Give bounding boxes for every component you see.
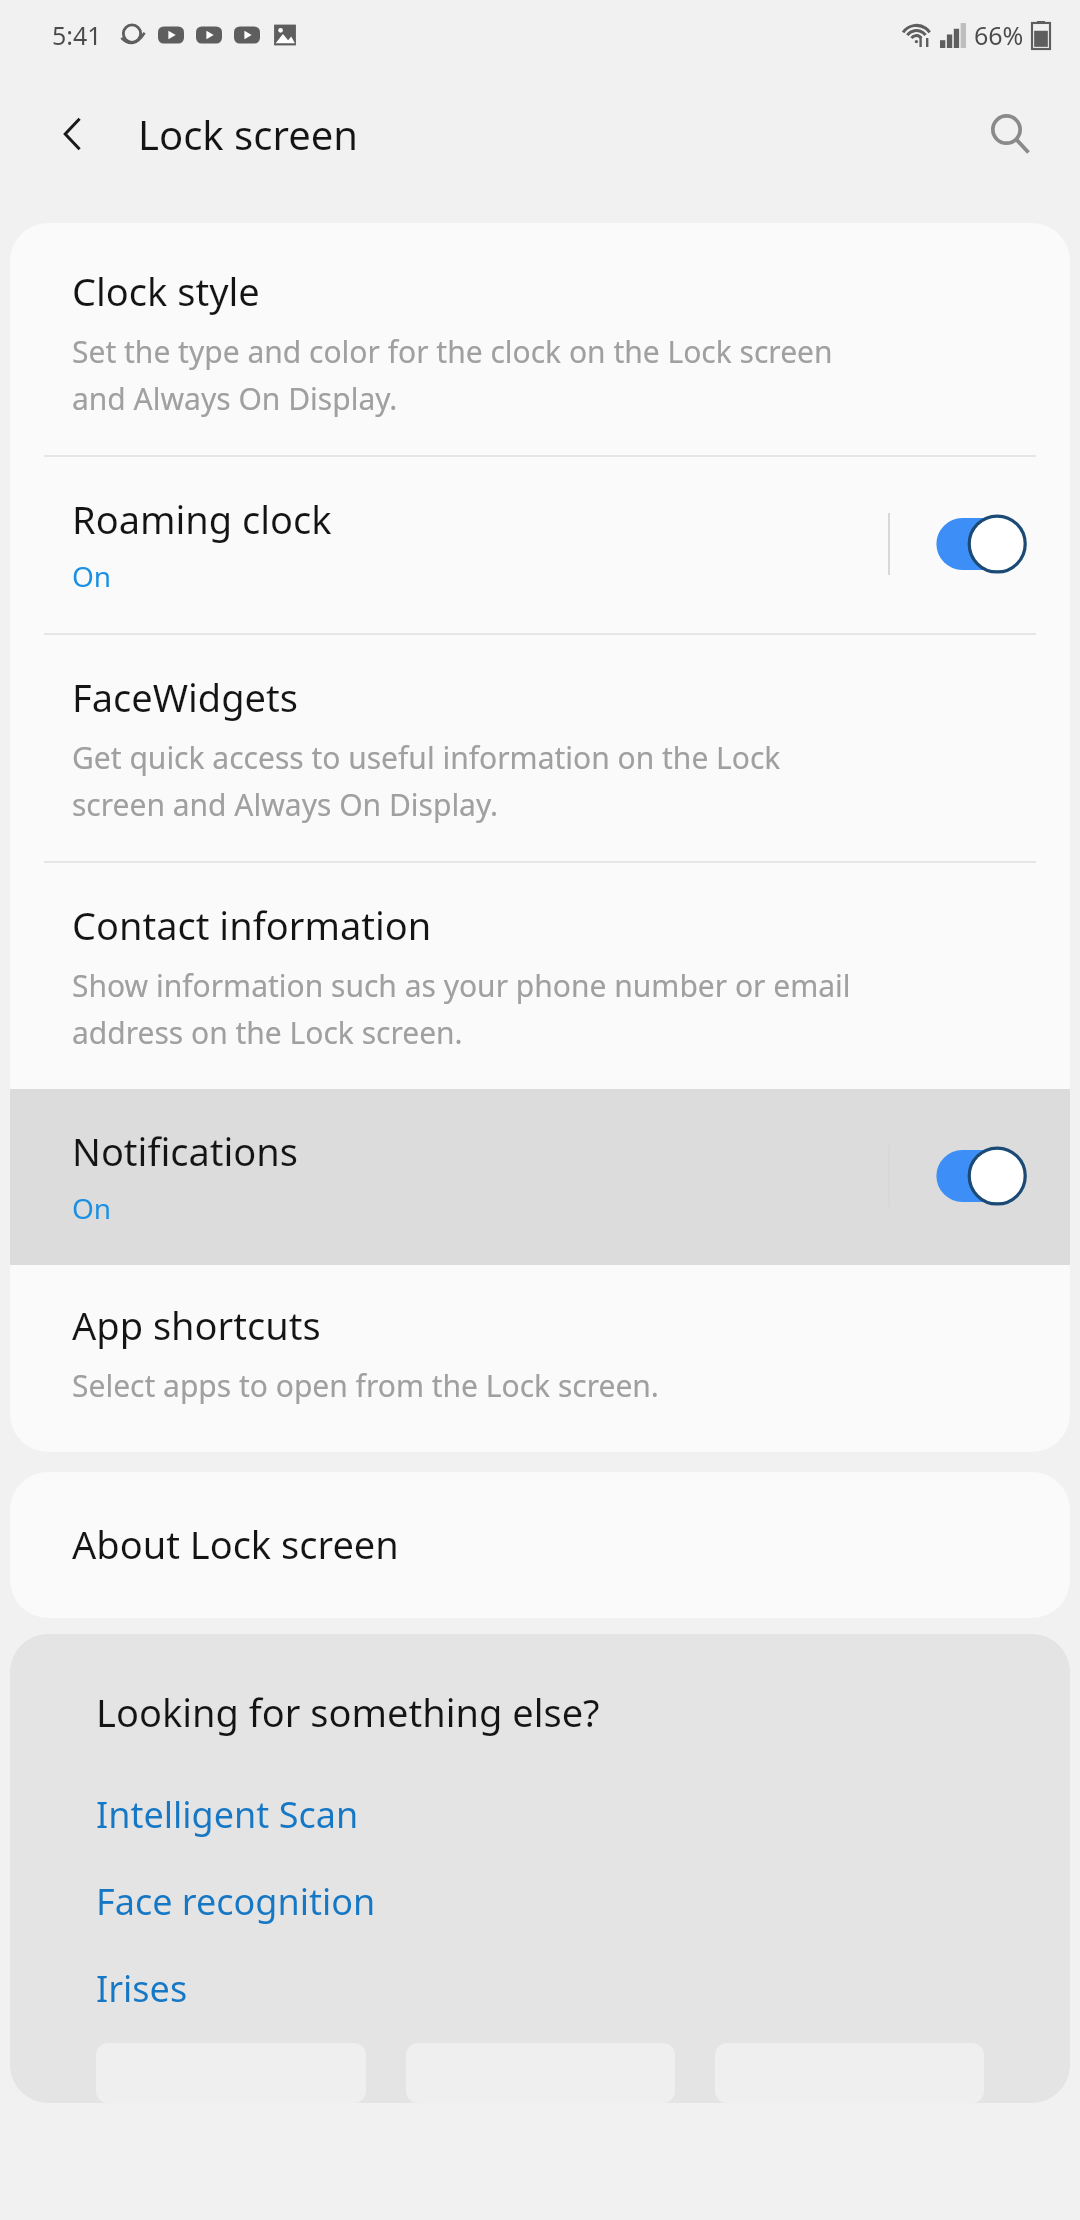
button[interactable]: Notifications toggle — [926, 1140, 1030, 1212]
button[interactable]: Clock style — [10, 223, 1070, 455]
button[interactable]: Search — [968, 92, 1052, 176]
staticText: Contact information — [72, 899, 432, 951]
staticText: Lock screen — [138, 107, 359, 161]
staticText: address on the Lock screen. — [72, 1012, 463, 1053]
staticText: Select apps to open from the Lock screen… — [72, 1365, 659, 1406]
staticText: Notifications — [72, 1125, 299, 1177]
staticText: Clock style — [72, 265, 260, 317]
button[interactable]: Irises — [96, 1964, 188, 2013]
staticText: 5:41 — [52, 18, 102, 52]
staticText: Looking for something else? — [96, 1686, 600, 1738]
button[interactable]: About Lock screen — [10, 1472, 1070, 1618]
staticText: Irises — [96, 1964, 188, 2013]
staticText: Roaming clock — [72, 493, 332, 545]
staticText: and Always On Display. — [72, 378, 398, 419]
staticText: Get quick access to useful information o… — [72, 737, 781, 778]
staticText: screen and Always On Display. — [72, 784, 499, 825]
button[interactable]: Notifications — [10, 1089, 1070, 1265]
staticText: Intelligent Scan — [96, 1790, 359, 1839]
staticText: Face recognition — [96, 1877, 376, 1926]
button[interactable]: FaceWidgets — [10, 635, 1070, 861]
button[interactable]: Back — [34, 94, 114, 174]
button[interactable]: Face recognition — [96, 1877, 376, 1926]
staticText: 66% — [974, 18, 1024, 52]
staticText: About Lock screen — [72, 1518, 399, 1570]
button[interactable]: Roaming clock — [10, 457, 1070, 633]
staticText: FaceWidgets — [72, 671, 298, 723]
button[interactable]: App shortcuts — [10, 1265, 1070, 1452]
staticText: On — [72, 557, 112, 595]
staticText: Set the type and color for the clock on … — [72, 331, 833, 372]
staticText: Show information such as your phone numb… — [72, 965, 851, 1006]
button[interactable]: Roaming clock toggle — [926, 508, 1030, 580]
staticText: App shortcuts — [72, 1299, 321, 1351]
button[interactable]: Intelligent Scan — [96, 1790, 359, 1839]
staticText: On — [72, 1189, 112, 1227]
button[interactable]: Contact information — [10, 863, 1070, 1089]
